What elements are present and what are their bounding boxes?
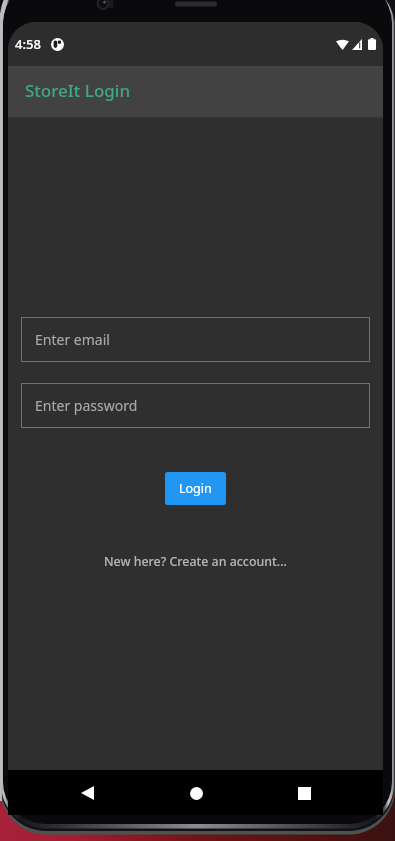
button[interactable]: Home [174,771,218,815]
button[interactable]: New here? Create an account... [98,551,293,572]
staticText: Enter password [35,396,138,415]
button[interactable]: Enter email [21,317,370,362]
button[interactable]: Login [165,472,226,505]
staticText: Enter email [35,330,110,349]
button[interactable]: Recents [282,771,326,815]
staticText: Login [179,480,212,497]
staticText: 4:58 [15,35,41,53]
button[interactable]: Enter password [21,383,370,428]
staticText: StoreIt Login [25,79,131,102]
button[interactable]: Back [65,771,109,815]
